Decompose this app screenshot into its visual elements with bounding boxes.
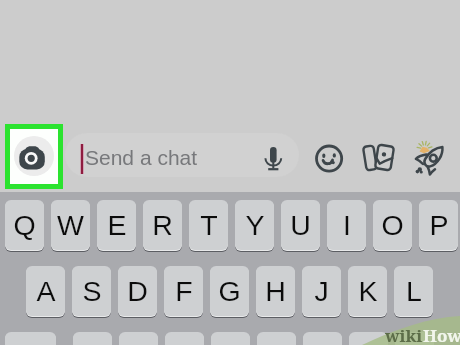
staticText: G <box>218 275 241 307</box>
staticText: K <box>358 275 378 307</box>
staticText: A <box>36 275 56 307</box>
button[interactable]: O <box>373 200 412 250</box>
staticText: wiki <box>385 324 423 345</box>
button[interactable]: I <box>327 200 366 250</box>
button[interactable]: J <box>302 266 341 316</box>
button[interactable]: E <box>97 200 136 250</box>
staticText: S <box>82 275 102 307</box>
button[interactable] <box>211 332 250 345</box>
button[interactable]: K <box>348 266 387 316</box>
staticText: R <box>152 209 173 241</box>
button[interactable]: T <box>189 200 228 250</box>
staticText: H <box>265 275 286 307</box>
button[interactable] <box>65 133 299 177</box>
button[interactable]: P <box>419 200 458 250</box>
staticText: How <box>423 324 460 345</box>
button[interactable]: Y <box>235 200 274 250</box>
button[interactable]: L <box>394 266 433 316</box>
staticText: Y <box>245 209 265 241</box>
staticText: Q <box>13 209 36 241</box>
staticText: P <box>429 209 449 241</box>
button[interactable]: G <box>210 266 249 316</box>
button[interactable] <box>73 332 112 345</box>
button[interactable]: A <box>26 266 65 316</box>
staticText: Send a chat <box>85 146 198 169</box>
button[interactable]: Stickers <box>362 142 395 172</box>
staticText: O <box>381 209 404 241</box>
button[interactable]: W <box>51 200 90 250</box>
button[interactable]: Voice message <box>262 144 285 172</box>
button[interactable]: Emoji <box>315 143 344 172</box>
staticText: T <box>200 209 218 241</box>
staticText: I <box>343 209 351 241</box>
button[interactable] <box>395 332 434 345</box>
button[interactable] <box>119 332 158 345</box>
button[interactable] <box>165 332 204 345</box>
button[interactable]: D <box>118 266 157 316</box>
button[interactable]: F <box>164 266 203 316</box>
button[interactable] <box>303 332 342 345</box>
button[interactable]: S <box>72 266 111 316</box>
staticText: W <box>57 209 84 241</box>
staticText: D <box>127 275 148 307</box>
button[interactable]: Camera <box>14 136 54 176</box>
button[interactable]: Games <box>414 138 444 176</box>
button[interactable]: R <box>143 200 182 250</box>
staticText: E <box>107 209 127 241</box>
button[interactable]: Q <box>5 200 44 250</box>
button[interactable] <box>257 332 296 345</box>
staticText: L <box>406 275 422 307</box>
button[interactable] <box>349 332 388 345</box>
button[interactable]: H <box>256 266 295 316</box>
button[interactable] <box>5 332 56 345</box>
button[interactable]: U <box>281 200 320 250</box>
staticText: F <box>175 275 193 307</box>
staticText: J <box>314 275 329 307</box>
staticText: U <box>290 209 311 241</box>
